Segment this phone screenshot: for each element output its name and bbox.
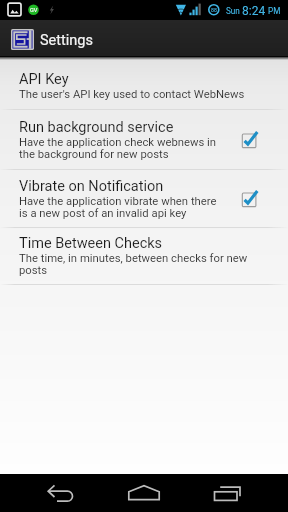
staticText: GV	[30, 7, 38, 14]
button[interactable]: Run background service	[0, 110, 288, 169]
staticText: The time, in minutes, between checks for…	[19, 252, 268, 277]
button[interactable]: Recent apps	[192, 474, 264, 512]
staticText: Run background service	[19, 119, 174, 136]
staticText: Sun	[226, 6, 240, 16]
button[interactable]: Home	[108, 474, 180, 512]
button[interactable]: Toggle setting	[242, 170, 288, 227]
button[interactable]: API Key	[0, 57, 288, 109]
staticText: 8:24	[242, 4, 266, 18]
staticText: Have the application check webnews in th…	[19, 136, 221, 161]
button[interactable]: Back	[25, 474, 97, 512]
staticText: 88	[211, 7, 217, 13]
staticText: Settings	[40, 32, 93, 49]
button[interactable]: Toggle setting	[242, 110, 288, 169]
staticText: PM	[268, 6, 281, 16]
staticText: Have the application vibrate when there …	[19, 195, 221, 220]
button[interactable]: Vibrate on Notification	[0, 170, 288, 227]
staticText: Time Between Checks	[19, 235, 163, 252]
staticText: Vibrate on Notification	[19, 178, 164, 195]
staticText: The user's API key used to contact WebNe…	[19, 88, 245, 101]
button[interactable]: Time Between Checks	[0, 228, 288, 284]
staticText: API Key	[19, 71, 69, 88]
